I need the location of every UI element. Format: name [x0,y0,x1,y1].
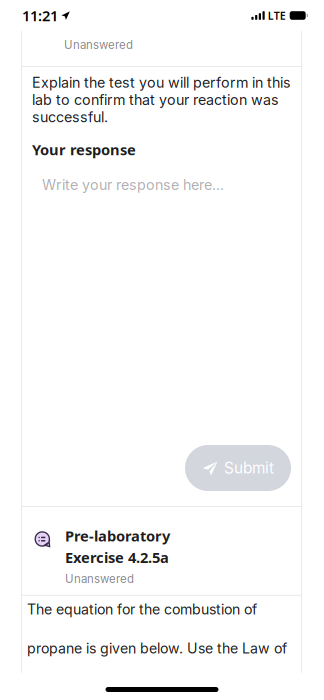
staticText: Write your response here... [42,176,224,194]
staticText: LTE [268,8,286,23]
staticText: Your response [32,140,136,159]
staticText: Submit [224,459,274,477]
staticText: Exercise 4.2.5a [65,547,169,567]
staticText: 11:21 [22,6,58,25]
staticText: The equation for the combustion of [27,601,257,618]
button[interactable]: Submit [185,445,291,491]
staticText: Explain the test you will perform in thi… [32,74,291,126]
button[interactable]: Pre-laboratory [21,507,302,595]
staticText: Pre-laboratory [65,526,170,545]
staticText: Unanswered [64,38,133,52]
staticText: Unanswered [65,572,134,586]
staticText: propane is given below. Use the Law of [27,640,287,657]
